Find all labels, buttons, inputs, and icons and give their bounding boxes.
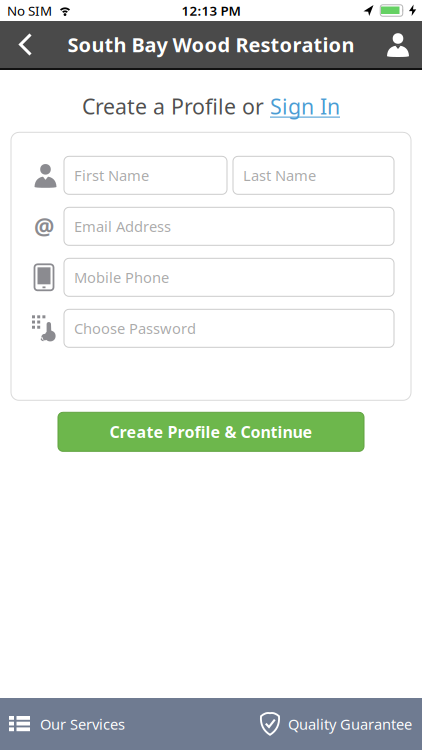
- staticText: Last Name: [243, 166, 316, 185]
- staticText: Mobile Phone: [74, 268, 169, 287]
- button[interactable]: First Name: [64, 156, 227, 194]
- staticText: Choose Password: [74, 319, 196, 338]
- staticText: No SIM: [7, 2, 52, 19]
- button[interactable]: Our Services: [0, 698, 125, 750]
- staticText: South Bay Wood Restoration: [67, 31, 354, 58]
- button[interactable]: Create Profile & Continue: [58, 412, 364, 451]
- staticText: Create Profile & Continue: [109, 421, 312, 442]
- button[interactable]: Account: [386, 22, 422, 67]
- staticText: First Name: [74, 166, 149, 185]
- button[interactable]: Last Name: [233, 156, 394, 194]
- staticText: Our Services: [40, 714, 125, 734]
- button[interactable]: Quality Guarantee: [259, 696, 422, 750]
- button[interactable]: Mobile Phone: [64, 258, 394, 296]
- staticText: @: [34, 211, 54, 241]
- staticText: Create a Profile or: [82, 92, 270, 120]
- staticText: Email Address: [74, 217, 171, 236]
- staticText: 12:13 PM: [181, 2, 240, 19]
- button[interactable]: Sign In: [270, 92, 340, 120]
- button[interactable]: Choose Password: [64, 309, 394, 347]
- button[interactable]: Email Address: [64, 207, 394, 245]
- staticText: Quality Guarantee: [288, 714, 412, 734]
- button[interactable]: Back: [0, 21, 34, 67]
- staticText: Sign In: [270, 92, 340, 120]
